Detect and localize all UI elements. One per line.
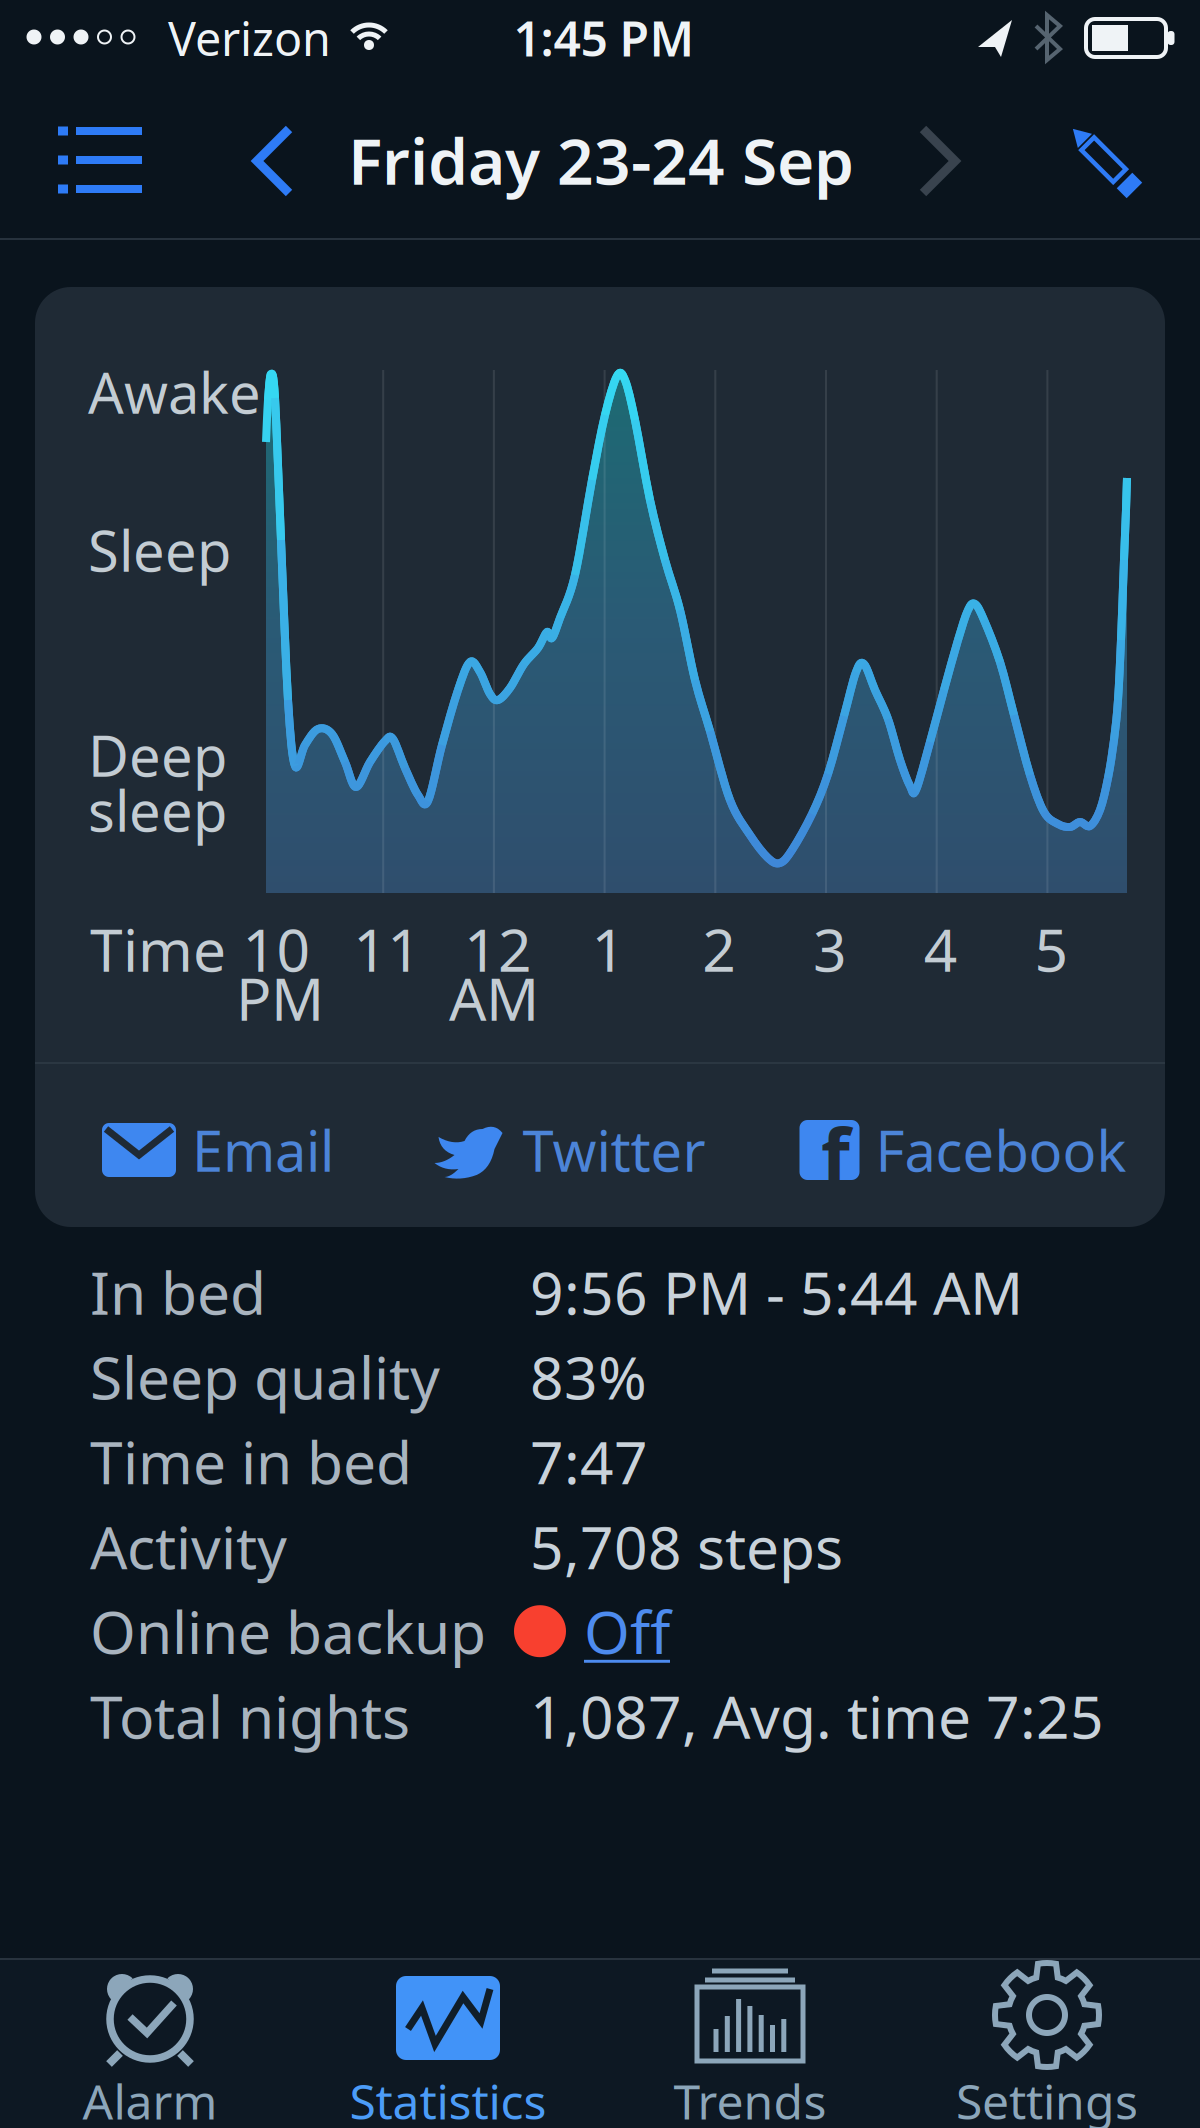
staticText: Alarm — [82, 2069, 217, 2128]
staticText: Sleep — [88, 513, 231, 587]
staticText: Twitter — [522, 1113, 705, 1187]
staticText: 1 — [592, 910, 626, 988]
button[interactable]: Next night — [917, 125, 961, 197]
staticText: 1,087, Avg. time 7:25 — [530, 1677, 1104, 1755]
staticText: Email — [192, 1113, 334, 1187]
staticText: Time in bed — [90, 1423, 412, 1500]
staticText: 2 — [702, 910, 736, 988]
staticText: Activity — [90, 1507, 287, 1585]
staticText: Statistics — [349, 2069, 546, 2128]
staticText: Facebook — [875, 1113, 1126, 1187]
staticText: 1:45 PM — [513, 6, 694, 70]
staticText: AM — [449, 959, 539, 1037]
staticText: Verizon — [168, 7, 331, 69]
staticText: In bed — [90, 1253, 266, 1331]
button[interactable]: Share on Facebook — [799, 1113, 1126, 1187]
staticText: sleep — [88, 773, 227, 847]
staticText: 9:56 PM - 5:44 AM — [530, 1253, 1023, 1331]
button[interactable]: Settings — [897, 1958, 1197, 2128]
button[interactable]: Trends — [600, 1958, 900, 2128]
staticText: 4 — [924, 910, 958, 988]
button[interactable]: Online backup Off — [514, 1592, 670, 1670]
button[interactable]: Sleep notes — [55, 120, 145, 200]
staticText: 5,708 steps — [530, 1507, 843, 1585]
button[interactable]: Alarm — [0, 1958, 300, 2128]
staticText: Settings — [956, 2069, 1138, 2128]
button[interactable]: Previous night — [251, 125, 295, 197]
staticText: f — [821, 1104, 850, 1204]
button[interactable]: Share on Twitter — [428, 1113, 705, 1187]
staticText: Time — [90, 910, 226, 988]
button[interactable]: Statistics — [298, 1958, 598, 2128]
staticText: Trends — [673, 2069, 826, 2128]
staticText: 10 — [242, 910, 310, 988]
staticText: Sleep quality — [90, 1338, 440, 1416]
staticText: PM — [236, 959, 324, 1037]
staticText: Friday 23-24 Sep — [348, 117, 854, 202]
staticText: 83% — [530, 1338, 647, 1416]
staticText: 11 — [353, 910, 421, 988]
staticText: Total nights — [90, 1677, 410, 1755]
staticText: Off — [584, 1592, 670, 1670]
staticText: 12 — [464, 910, 532, 988]
staticText: 5 — [1034, 910, 1068, 988]
button[interactable]: Share by Email — [102, 1113, 334, 1187]
staticText: 3 — [813, 910, 847, 988]
staticText: Awake — [88, 355, 261, 429]
staticText: Deep — [88, 718, 227, 792]
staticText: Online backup — [90, 1592, 486, 1670]
button[interactable]: Edit sleep note — [1060, 147, 1148, 173]
staticText: 7:47 — [530, 1423, 648, 1500]
